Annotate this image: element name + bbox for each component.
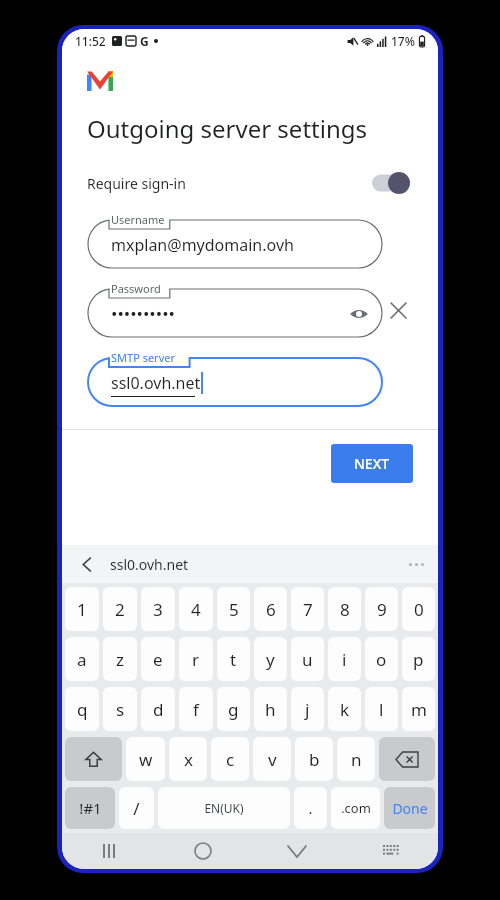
staticText: 11:52 — [75, 33, 106, 49]
button[interactable]: a — [65, 637, 99, 681]
button[interactable]: u — [291, 637, 324, 681]
staticText: m — [411, 698, 427, 721]
button[interactable]: l — [365, 687, 398, 731]
button[interactable]: Done — [384, 787, 435, 829]
staticText: 6 — [266, 598, 276, 621]
staticText: u — [302, 648, 313, 671]
staticText: c — [226, 748, 235, 771]
button[interactable]: d — [141, 687, 175, 731]
staticText: v — [268, 748, 277, 771]
staticText: o — [376, 648, 387, 671]
button[interactable]: Previous suggestion — [74, 551, 100, 577]
button[interactable]: 0 — [402, 587, 435, 631]
staticText: 7 — [303, 598, 313, 621]
button[interactable]: g — [217, 687, 250, 731]
button[interactable]: e — [141, 637, 175, 681]
button[interactable]: i — [328, 637, 361, 681]
staticText: z — [116, 648, 124, 671]
staticText: •••••••••• — [111, 302, 175, 325]
staticText: 17% — [391, 33, 415, 49]
button[interactable]: Hide keyboard — [250, 833, 344, 869]
staticText: i — [342, 648, 347, 671]
button[interactable]: n — [337, 737, 375, 781]
button[interactable]: w — [126, 737, 165, 781]
staticText: 8 — [340, 598, 350, 621]
button[interactable]: z — [103, 637, 137, 681]
button[interactable]: 1 — [65, 587, 99, 631]
button[interactable]: .com — [331, 787, 380, 829]
button[interactable]: k — [328, 687, 361, 731]
staticText: 0 — [414, 598, 424, 621]
button[interactable]: Require sign-in — [62, 163, 438, 203]
staticText: l — [379, 698, 384, 721]
staticText: 5 — [229, 598, 239, 621]
button[interactable]: 9 — [365, 587, 398, 631]
staticText: d — [153, 698, 164, 721]
staticText: SMTP server — [111, 350, 175, 365]
staticText: / — [133, 797, 140, 820]
staticText: ssl0.ovh.net — [111, 372, 201, 394]
button[interactable]: m — [402, 687, 435, 731]
staticText: x — [184, 748, 193, 771]
button[interactable]: Recent apps — [62, 833, 156, 869]
button[interactable]: SMTP server — [87, 351, 383, 407]
staticText: .com — [341, 799, 371, 817]
staticText: t — [230, 648, 237, 671]
button[interactable]: b — [295, 737, 333, 781]
staticText: Password — [111, 281, 161, 296]
button[interactable]: Username — [87, 213, 383, 269]
button[interactable]: 3 — [141, 587, 175, 631]
button[interactable]: 8 — [328, 587, 361, 631]
staticText: 1 — [77, 598, 87, 621]
button[interactable]: Shift — [65, 737, 122, 781]
button[interactable]: . — [294, 787, 327, 829]
button[interactable]: s — [103, 687, 137, 731]
button[interactable]: / — [119, 787, 154, 829]
button[interactable]: f — [179, 687, 213, 731]
button[interactable]: q — [65, 687, 99, 731]
staticText: w — [139, 748, 153, 771]
button[interactable]: 7 — [291, 587, 324, 631]
button[interactable]: Require sign-in toggle — [372, 172, 410, 194]
button[interactable]: 4 — [179, 587, 213, 631]
button[interactable]: 5 — [217, 587, 250, 631]
button[interactable]: v — [253, 737, 291, 781]
button[interactable]: ssl0.ovh.net — [110, 555, 189, 574]
button[interactable]: 6 — [254, 587, 287, 631]
button[interactable]: Backspace — [379, 737, 435, 781]
button[interactable]: p — [402, 637, 435, 681]
staticText: Outgoing server settings — [87, 112, 368, 145]
button[interactable]: !#1 — [65, 787, 115, 829]
staticText: q — [77, 698, 88, 721]
staticText: s — [116, 698, 125, 721]
staticText: 2 — [115, 598, 125, 621]
button[interactable]: EN(UK) — [158, 787, 290, 829]
button[interactable]: x — [169, 737, 207, 781]
staticText: a — [77, 648, 87, 671]
button[interactable]: j — [291, 687, 324, 731]
staticText: Username — [111, 212, 165, 227]
button[interactable]: Password — [87, 282, 383, 338]
staticText: k — [340, 698, 350, 721]
button[interactable]: 2 — [103, 587, 137, 631]
button[interactable]: Show password — [349, 304, 369, 324]
staticText: f — [193, 698, 199, 721]
staticText: r — [192, 648, 200, 671]
button[interactable]: t — [217, 637, 250, 681]
staticText: e — [153, 648, 163, 671]
button[interactable]: Switch keyboard — [344, 833, 438, 869]
staticText: mxplan@mydomain.ovh — [111, 234, 294, 256]
button[interactable]: o — [365, 637, 398, 681]
button[interactable]: y — [254, 637, 287, 681]
button[interactable]: More options — [409, 563, 424, 566]
staticText: EN(UK) — [204, 800, 244, 816]
button[interactable]: h — [254, 687, 287, 731]
staticText: 3 — [153, 598, 163, 621]
button[interactable]: r — [179, 637, 213, 681]
button[interactable]: c — [211, 737, 249, 781]
button[interactable]: Clear password — [383, 295, 413, 325]
staticText: g — [228, 698, 239, 721]
button[interactable]: Home — [156, 833, 250, 869]
staticText: n — [351, 748, 362, 771]
button[interactable]: NEXT — [331, 444, 413, 483]
